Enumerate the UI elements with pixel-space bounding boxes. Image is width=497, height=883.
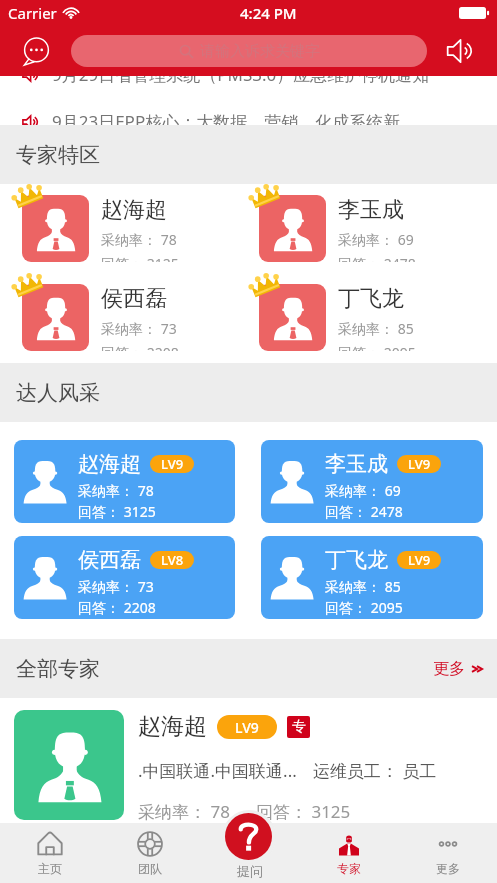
staticText: 提问 xyxy=(237,863,263,879)
staticText: 采纳率： 73 xyxy=(101,319,177,338)
button[interactable]: Messages xyxy=(23,38,50,65)
staticText: 4:24 PM xyxy=(240,3,297,23)
staticText: 9月29日省管理系统（PMS3.0）应急维护停机通知 xyxy=(52,76,430,86)
button[interactable]: 主页 xyxy=(0,823,100,883)
button[interactable]: 专家 xyxy=(299,823,398,883)
staticText: 专家特区 xyxy=(16,142,100,168)
button[interactable]: 侯西磊 xyxy=(22,284,248,351)
staticText: Carrier xyxy=(8,3,57,23)
staticText: 采纳率： 69 xyxy=(325,481,401,500)
button[interactable]: 更多 xyxy=(398,823,497,883)
staticText: 回答： 3125 xyxy=(101,254,179,262)
staticText: 侯西磊 xyxy=(101,285,167,313)
staticText: .中国联通.中国联通... xyxy=(138,759,297,782)
staticText: 采纳率： 85 xyxy=(325,577,401,596)
staticText: 回答： 2208 xyxy=(78,598,156,617)
staticText: 团队 xyxy=(138,861,162,876)
staticText: 回答： 2208 xyxy=(101,343,179,351)
button[interactable]: 丁飞龙 xyxy=(261,536,483,619)
button[interactable]: 更多 xyxy=(433,659,483,679)
staticText: 专 xyxy=(292,718,306,736)
staticText: 运维员工： 员工 xyxy=(313,759,437,782)
staticText: LV8 xyxy=(161,551,184,569)
button[interactable]: 丁飞龙 xyxy=(259,284,497,351)
staticText: 赵海超 xyxy=(78,451,141,477)
staticText: 回答： 2095 xyxy=(325,598,403,617)
button[interactable]: 李玉成 xyxy=(259,195,497,262)
staticText: 侯西磊 xyxy=(78,547,141,573)
button[interactable]: 团队 xyxy=(100,823,200,883)
button[interactable]: 提问 xyxy=(200,823,299,883)
staticText: 赵海超 xyxy=(138,712,207,741)
staticText: 更多 xyxy=(436,861,460,876)
staticText: LV9 xyxy=(408,551,431,569)
staticText: 请输入诉求关键字 xyxy=(200,42,320,61)
button[interactable]: 请输入诉求关键字 xyxy=(71,35,427,67)
staticText: 9月23日EPP核心：大数据、营销、化成系统新 xyxy=(52,110,401,125)
button[interactable]: 赵海超 xyxy=(22,195,248,262)
staticText: 赵海超 xyxy=(101,196,167,224)
staticText: 采纳率： 69 xyxy=(338,230,414,249)
staticText: 回答： 2095 xyxy=(338,343,416,351)
staticText: LV9 xyxy=(408,455,431,473)
staticText: 丁飞龙 xyxy=(338,285,404,313)
staticText: LV9 xyxy=(235,718,259,737)
staticText: 采纳率： 78 xyxy=(138,800,230,823)
staticText: 达人风采 xyxy=(16,380,100,406)
staticText: 采纳率： 85 xyxy=(338,319,414,338)
button[interactable]: 提问 xyxy=(225,813,272,860)
button[interactable]: 李玉成 xyxy=(261,440,483,523)
staticText: LV9 xyxy=(161,455,184,473)
staticText: 回答： 3125 xyxy=(256,800,351,823)
staticText: 丁飞龙 xyxy=(325,547,388,573)
staticText: 全部专家 xyxy=(16,656,100,682)
staticText: 采纳率： 78 xyxy=(101,230,177,249)
staticText: 回答： 2478 xyxy=(338,254,416,262)
staticText: 更多 xyxy=(433,659,465,679)
staticText: 回答： 2478 xyxy=(325,502,403,521)
button[interactable]: 赵海超 xyxy=(14,710,497,823)
button[interactable]: 赵海超 xyxy=(14,440,235,523)
staticText: 李玉成 xyxy=(325,451,388,477)
staticText: 主页 xyxy=(38,861,62,876)
staticText: 专家 xyxy=(337,861,361,876)
staticText: 李玉成 xyxy=(338,196,404,224)
staticText: 回答： 3125 xyxy=(78,502,156,521)
staticText: 采纳率： 73 xyxy=(78,577,154,596)
button[interactable]: Sound xyxy=(446,37,474,65)
staticText: 采纳率： 78 xyxy=(78,481,154,500)
button[interactable]: 侯西磊 xyxy=(14,536,235,619)
